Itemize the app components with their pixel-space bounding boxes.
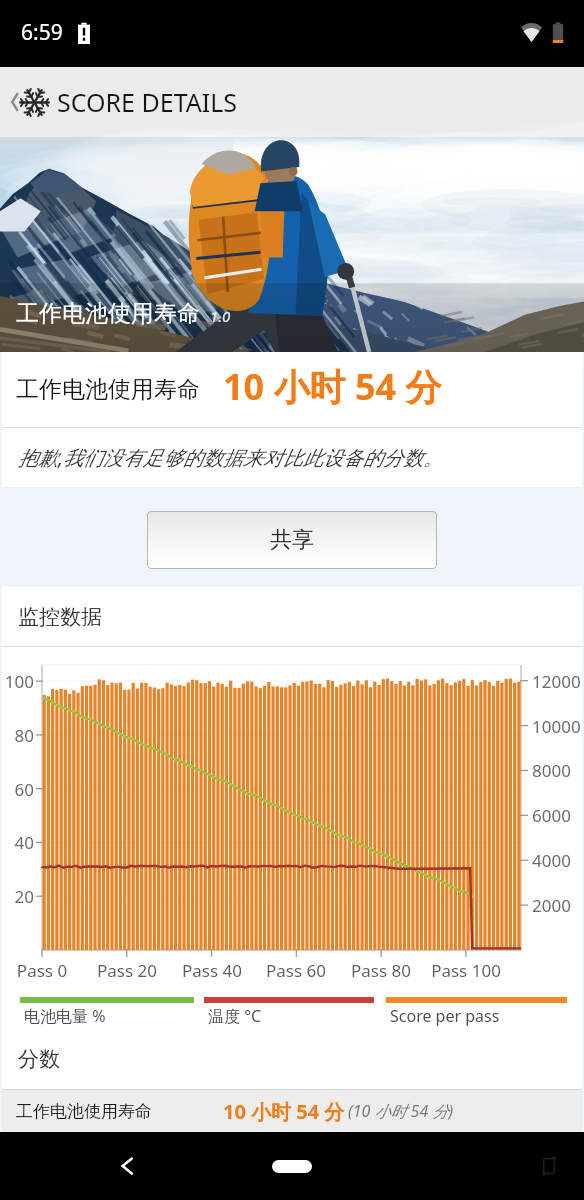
staticText: 8000 xyxy=(532,759,584,782)
staticText: Pass 0 xyxy=(6,959,78,982)
staticText: 分数 xyxy=(18,1046,60,1072)
staticText: SCORE DETAILS xyxy=(57,85,238,119)
staticText: Pass 40 xyxy=(176,959,248,982)
staticText: 4000 xyxy=(532,849,584,872)
staticText: 10000 xyxy=(532,715,584,738)
staticText: 工作电池使用寿命 xyxy=(16,1101,152,1122)
staticText: 共享 xyxy=(270,526,314,554)
staticText: 10 小时 54 分 xyxy=(223,1098,345,1125)
staticText: Pass 60 xyxy=(260,959,332,982)
staticText: 12000 xyxy=(532,670,584,693)
staticText: (10 小时 54 分) xyxy=(348,1100,454,1122)
staticText: 6000 xyxy=(532,804,584,827)
staticText: Pass 100 xyxy=(430,959,502,982)
staticText: 温度 °C xyxy=(208,1005,262,1027)
staticText: 6:59 xyxy=(21,18,63,47)
staticText: 10 小时 54 分 xyxy=(223,362,442,411)
staticText: 100 xyxy=(2,670,34,693)
staticText: 监控数据 xyxy=(18,604,102,630)
button[interactable]: Back xyxy=(0,1132,195,1200)
staticText: 1.0 xyxy=(210,306,231,326)
staticText: 60 xyxy=(2,778,34,801)
staticText: 20 xyxy=(2,885,34,908)
staticText: 80 xyxy=(2,724,34,747)
staticText: 工作电池使用寿命 xyxy=(16,375,200,404)
button[interactable]: 共享 xyxy=(147,511,437,569)
staticText: Score per pass xyxy=(390,1005,500,1027)
staticText: 抱歉,我们没有足够的数据来对比此设备的分数。 xyxy=(18,444,444,471)
button[interactable]: Back xyxy=(0,67,584,137)
staticText: 电池电量 % xyxy=(24,1005,106,1027)
button[interactable]: Home xyxy=(195,1132,389,1200)
other: Back xyxy=(5,91,27,113)
staticText: 2000 xyxy=(532,894,584,917)
staticText: Pass 20 xyxy=(91,959,163,982)
staticText: 工作电池使用寿命 xyxy=(16,299,200,328)
staticText: 40 xyxy=(2,831,34,854)
staticText: Pass 80 xyxy=(345,959,417,982)
